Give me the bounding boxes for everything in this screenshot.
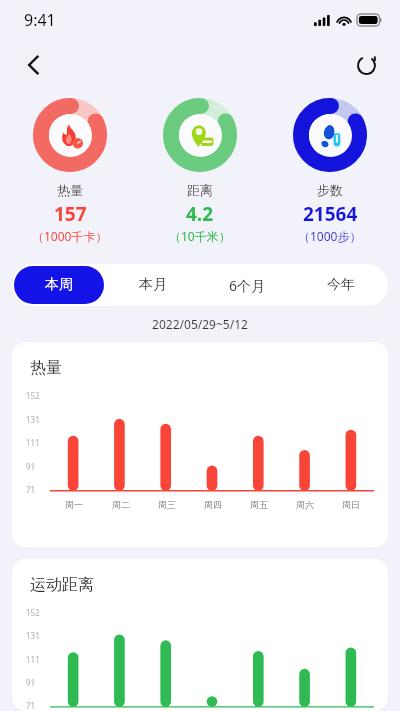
staticText: 热量 xyxy=(57,182,83,198)
button[interactable]: 本月 xyxy=(108,266,198,304)
staticText: 周五 xyxy=(250,499,268,510)
button[interactable]: 距离 xyxy=(140,98,260,244)
staticText: 本月 xyxy=(139,276,167,294)
button[interactable]: 6个月 xyxy=(202,266,292,304)
staticText: 9:41 xyxy=(24,9,56,31)
staticText: 运动距离 xyxy=(30,575,94,595)
staticText: 距离 xyxy=(187,182,213,198)
staticText: 步数 xyxy=(317,182,343,198)
staticText: 周二 xyxy=(112,499,130,510)
button[interactable]: Refresh xyxy=(344,43,388,87)
staticText: 2022/05/29~5/12 xyxy=(0,316,400,332)
staticText: （1000步） xyxy=(298,228,362,244)
staticText: （10千米） xyxy=(169,228,231,244)
staticText: 今年 xyxy=(327,276,355,294)
button[interactable]: 运动距离 xyxy=(12,559,388,711)
staticText: 131 xyxy=(26,414,40,425)
staticText: 111 xyxy=(26,654,40,665)
staticText: 91 xyxy=(26,461,36,472)
staticText: 71 xyxy=(26,484,36,495)
staticText: 131 xyxy=(26,630,40,641)
staticText: （1000千卡） xyxy=(32,228,108,244)
staticText: 周六 xyxy=(296,499,314,510)
staticText: 周一 xyxy=(65,499,83,510)
button[interactable]: 今年 xyxy=(296,266,386,304)
staticText: 152 xyxy=(26,390,40,401)
staticText: 157 xyxy=(54,201,87,227)
staticText: 152 xyxy=(26,607,40,618)
button[interactable]: Back xyxy=(12,43,56,87)
staticText: 111 xyxy=(26,437,40,448)
staticText: 周三 xyxy=(158,499,176,510)
staticText: 91 xyxy=(26,677,36,688)
button[interactable]: 热量 xyxy=(12,342,388,547)
staticText: 热量 xyxy=(30,358,62,378)
staticText: 本周 xyxy=(45,276,73,294)
staticText: 71 xyxy=(26,700,36,711)
staticText: 周日 xyxy=(342,499,360,510)
staticText: 4.2 xyxy=(186,201,214,227)
button[interactable]: 热量 xyxy=(10,98,130,244)
staticText: 周四 xyxy=(204,499,222,510)
staticText: 6个月 xyxy=(229,276,266,295)
button[interactable]: 本周 xyxy=(14,266,104,304)
staticText: 21564 xyxy=(303,201,358,227)
button[interactable]: 步数 xyxy=(270,98,390,244)
